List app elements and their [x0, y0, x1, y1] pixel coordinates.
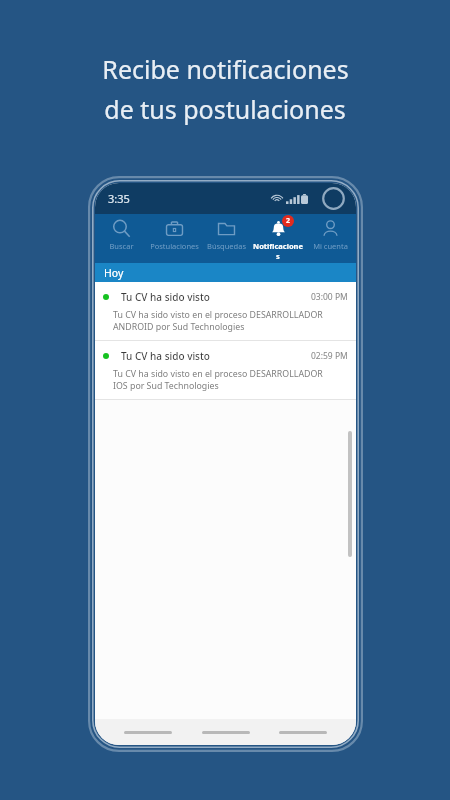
- button[interactable]: Tu CV ha sido visto: [95, 341, 356, 399]
- staticText: Buscar: [109, 241, 134, 251]
- staticText: Hoy: [104, 266, 124, 280]
- staticText: Mi cuenta: [313, 241, 348, 251]
- button[interactable]: Búsquedas: [200, 214, 252, 263]
- button[interactable]: Postulaciones: [148, 214, 200, 263]
- staticText: Recibe notificaciones: [102, 52, 349, 86]
- staticText: de tus postulaciones: [104, 92, 346, 126]
- button[interactable]: Tu CV ha sido visto: [95, 282, 356, 340]
- staticText: Tu CV ha sido visto en el proceso DESARR…: [113, 368, 323, 391]
- staticText: Búsquedas: [207, 241, 246, 251]
- button[interactable]: 2: [252, 214, 304, 263]
- staticText: 02:59 PM: [311, 350, 348, 362]
- staticText: Notificaciones: [252, 241, 304, 261]
- staticText: Tu CV ha sido visto: [121, 290, 210, 304]
- other: Navigation: [279, 731, 327, 734]
- button[interactable]: Mi cuenta: [304, 214, 356, 263]
- staticText: Tu CV ha sido visto en el proceso DESARR…: [113, 309, 323, 332]
- other: Navigation: [124, 731, 172, 734]
- staticText: Tu CV ha sido visto: [121, 349, 210, 363]
- staticText: 3:35: [108, 191, 130, 206]
- staticText: Postulaciones: [150, 241, 199, 251]
- button[interactable]: Buscar: [95, 214, 148, 263]
- staticText: 03:00 PM: [311, 291, 348, 303]
- other: Navigation: [202, 731, 250, 734]
- staticText: 2: [286, 216, 291, 226]
- button[interactable]: Hoy: [95, 263, 356, 282]
